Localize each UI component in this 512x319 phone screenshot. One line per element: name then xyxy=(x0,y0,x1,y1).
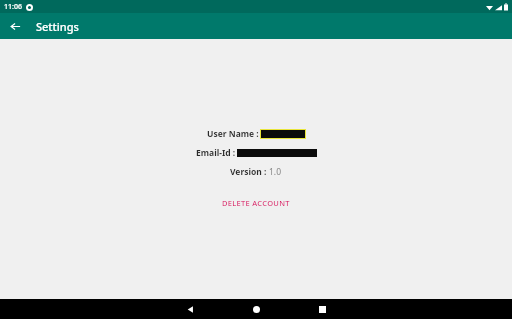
staticText: Version : xyxy=(230,166,269,178)
button[interactable]: Home xyxy=(233,299,279,319)
button[interactable]: Back xyxy=(167,299,213,319)
staticText: Settings xyxy=(36,19,79,34)
button[interactable]: Recent apps xyxy=(299,299,345,319)
staticText: 1.0 xyxy=(269,166,282,178)
staticText: User Name : xyxy=(207,128,259,140)
staticText: DELETE ACCOUNT xyxy=(222,198,290,208)
button[interactable]: DELETE ACCOUNT xyxy=(214,195,298,211)
staticText: Email-Id : xyxy=(196,147,236,159)
staticText: 11:06 xyxy=(4,2,22,12)
button[interactable]: Navigate up xyxy=(5,16,25,36)
